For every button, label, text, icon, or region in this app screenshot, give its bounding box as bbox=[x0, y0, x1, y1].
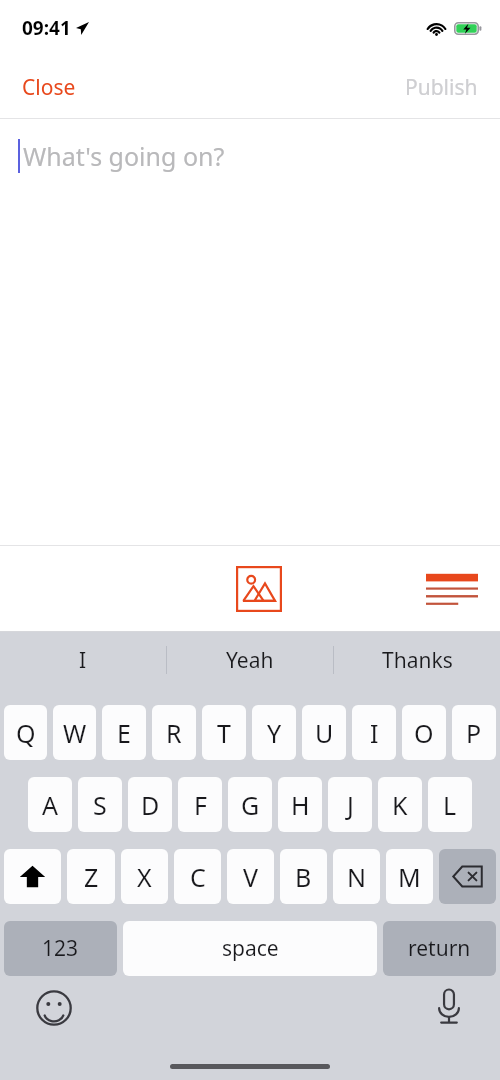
staticText: H bbox=[291, 788, 310, 822]
staticText: C bbox=[190, 860, 206, 894]
button[interactable]: R bbox=[152, 705, 196, 760]
staticText: 123 bbox=[42, 934, 79, 963]
button[interactable]: 123 bbox=[4, 921, 117, 976]
staticText: M bbox=[398, 860, 421, 894]
staticText: Z bbox=[84, 860, 99, 894]
button[interactable]: X bbox=[121, 849, 168, 904]
button[interactable]: Yeah bbox=[167, 632, 333, 688]
button[interactable]: E bbox=[102, 705, 146, 760]
staticText: Close bbox=[22, 73, 76, 102]
button[interactable]: Close bbox=[0, 56, 98, 118]
button[interactable]: Backspace bbox=[439, 849, 496, 904]
staticText: S bbox=[93, 788, 107, 822]
button[interactable]: S bbox=[78, 777, 122, 832]
button[interactable]: L bbox=[428, 777, 472, 832]
button[interactable]: V bbox=[227, 849, 274, 904]
staticText: K bbox=[392, 788, 408, 822]
button[interactable]: T bbox=[202, 705, 246, 760]
staticText: T bbox=[217, 716, 231, 750]
staticText: D bbox=[141, 788, 160, 822]
button[interactable]: N bbox=[333, 849, 380, 904]
staticText: X bbox=[137, 860, 152, 894]
staticText: Publish bbox=[405, 73, 478, 102]
staticText: space bbox=[222, 934, 279, 963]
button[interactable]: A bbox=[28, 777, 72, 832]
button[interactable]: Dictation bbox=[436, 988, 462, 1026]
button[interactable]: U bbox=[302, 705, 346, 760]
staticText: G bbox=[241, 788, 260, 822]
button[interactable]: Shift bbox=[4, 849, 61, 904]
staticText: Yeah bbox=[226, 646, 274, 675]
staticText: N bbox=[347, 860, 367, 894]
button[interactable]: Add photo bbox=[236, 566, 282, 612]
staticText: return bbox=[408, 934, 471, 963]
button[interactable]: W bbox=[53, 705, 96, 760]
staticText: R bbox=[166, 716, 182, 750]
button[interactable]: H bbox=[278, 777, 322, 832]
button[interactable]: D bbox=[128, 777, 172, 832]
staticText: Y bbox=[267, 716, 282, 750]
staticText: Thanks bbox=[382, 646, 453, 675]
staticText: I bbox=[370, 716, 379, 750]
staticText: Q bbox=[16, 716, 36, 750]
staticText: A bbox=[42, 788, 58, 822]
button[interactable]: Z bbox=[67, 849, 115, 904]
button[interactable]: J bbox=[328, 777, 372, 832]
staticText: B bbox=[295, 860, 312, 894]
button[interactable]: What's going on? bbox=[0, 119, 500, 545]
button[interactable]: P bbox=[452, 705, 496, 760]
staticText: P bbox=[466, 716, 482, 750]
staticText: W bbox=[63, 716, 87, 750]
button[interactable]: Thanks bbox=[334, 632, 500, 688]
button[interactable]: Text formatting bbox=[426, 570, 478, 608]
button[interactable]: space bbox=[123, 921, 377, 976]
staticText: J bbox=[347, 788, 354, 822]
button[interactable]: O bbox=[402, 705, 446, 760]
staticText: O bbox=[414, 716, 434, 750]
button[interactable]: Publish bbox=[383, 56, 500, 118]
staticText: F bbox=[194, 788, 207, 822]
staticText: E bbox=[117, 716, 131, 750]
button[interactable]: return bbox=[383, 921, 496, 976]
button[interactable]: Y bbox=[252, 705, 296, 760]
button[interactable]: C bbox=[174, 849, 221, 904]
button[interactable]: K bbox=[378, 777, 422, 832]
staticText: I bbox=[79, 646, 87, 675]
staticText: What's going on? bbox=[23, 139, 225, 173]
button[interactable]: G bbox=[228, 777, 272, 832]
button[interactable]: F bbox=[178, 777, 222, 832]
button[interactable]: Q bbox=[4, 705, 47, 760]
staticText: 09:41 bbox=[22, 15, 71, 41]
staticText: L bbox=[443, 788, 457, 822]
button[interactable]: M bbox=[386, 849, 433, 904]
button[interactable]: B bbox=[280, 849, 327, 904]
button[interactable]: I bbox=[352, 705, 396, 760]
staticText: U bbox=[315, 716, 334, 750]
staticText: V bbox=[243, 860, 259, 894]
button[interactable]: I bbox=[0, 632, 166, 688]
button[interactable]: Emoji keyboard bbox=[36, 990, 72, 1026]
